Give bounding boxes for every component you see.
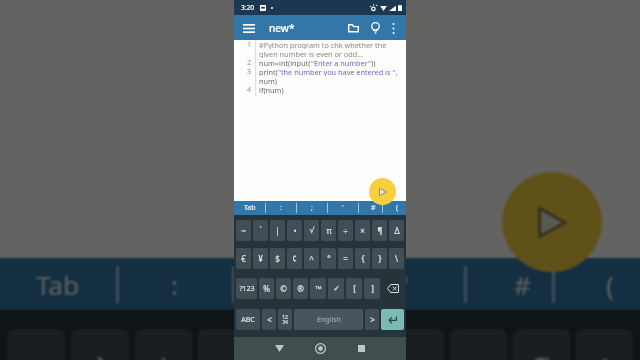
- button[interactable]: #: [464, 258, 580, 310]
- staticText: given number is even or odd...: [259, 49, 364, 58]
- staticText: 3: [247, 67, 252, 76]
- button[interactable]: :: [116, 258, 232, 310]
- staticText: ¥: [258, 253, 263, 264]
- button[interactable]: `: [71, 329, 129, 360]
- staticText: ©: [280, 283, 287, 294]
- button[interactable]: [: [346, 278, 362, 299]
- button[interactable]: ©: [276, 278, 291, 299]
- staticText: 3:20: [241, 3, 255, 12]
- button[interactable]: Tab: [0, 258, 116, 310]
- button[interactable]: {: [355, 248, 370, 269]
- button[interactable]: ÷: [387, 329, 444, 360]
- button[interactable]: ;: [296, 201, 327, 215]
- button[interactable]: Open folder: [343, 18, 363, 38]
- button[interactable]: (: [552, 258, 640, 310]
- button[interactable]: ]: [364, 278, 380, 299]
- button[interactable]: ¶: [372, 220, 387, 241]
- button[interactable]: Home: [300, 337, 341, 360]
- button[interactable]: |: [270, 220, 285, 241]
- button[interactable]: Backspace: [382, 278, 404, 299]
- button[interactable]: \: [389, 248, 404, 269]
- button[interactable]: English: [294, 309, 363, 330]
- button[interactable]: =: [338, 248, 353, 269]
- button[interactable]: ™: [310, 278, 326, 299]
- staticText: ^: [309, 253, 314, 264]
- button[interactable]: ': [348, 258, 464, 310]
- button[interactable]: Hint: [365, 18, 385, 38]
- button[interactable]: ABC: [236, 309, 260, 330]
- staticText: if(num): [259, 85, 284, 94]
- button[interactable]: Tab: [234, 201, 265, 215]
- staticText: }: [378, 253, 382, 264]
- staticText: Tab: [244, 203, 256, 213]
- button[interactable]: }: [372, 248, 387, 269]
- button[interactable]: Δ: [389, 220, 404, 241]
- button[interactable]: Menu: [242, 19, 256, 37]
- staticText: ™: [315, 283, 322, 294]
- staticText: 2: [247, 58, 252, 67]
- button[interactable]: ;: [232, 258, 348, 310]
- staticText: ¶: [532, 348, 552, 360]
- button[interactable]: ^: [304, 248, 319, 269]
- button[interactable]: π: [324, 329, 381, 360]
- staticText: ®: [297, 283, 304, 294]
- staticText: ÷: [343, 225, 348, 236]
- button[interactable]: ®: [293, 278, 308, 299]
- staticText: %: [263, 283, 270, 294]
- button[interactable]: Recent apps: [341, 337, 382, 360]
- staticText: ✓: [333, 284, 340, 293]
- button[interactable]: Run: [369, 178, 396, 205]
- button[interactable]: ×: [355, 220, 370, 241]
- staticText: |: [155, 348, 172, 360]
- button[interactable]: ¥: [253, 248, 268, 269]
- button[interactable]: ✓: [328, 278, 344, 299]
- button[interactable]: (: [382, 201, 406, 215]
- staticText: `: [96, 348, 105, 360]
- button[interactable]: %: [259, 278, 274, 299]
- staticText: num): [259, 76, 278, 85]
- button[interactable]: #: [358, 201, 389, 215]
- button[interactable]: Back: [259, 337, 300, 360]
- button[interactable]: :: [265, 201, 296, 215]
- button[interactable]: More options: [386, 19, 400, 37]
- button[interactable]: €: [236, 248, 251, 269]
- button[interactable]: ¢: [287, 248, 302, 269]
- staticText: Tab: [36, 267, 80, 302]
- button[interactable]: `: [253, 220, 268, 241]
- button[interactable]: Run: [502, 172, 602, 272]
- staticText: π: [326, 225, 332, 236]
- staticText: 1: [247, 40, 252, 49]
- button[interactable]: •: [287, 220, 302, 241]
- button[interactable]: ~: [236, 220, 251, 241]
- button[interactable]: ?123: [236, 278, 257, 299]
- staticText: ;: [311, 203, 313, 213]
- staticText: 12 34: [282, 314, 288, 325]
- staticText: ×: [360, 225, 365, 236]
- button[interactable]: Enter: [381, 309, 404, 330]
- button[interactable]: <: [262, 309, 276, 330]
- button[interactable]: ÷: [338, 220, 353, 241]
- button[interactable]: ': [327, 201, 358, 215]
- staticText: ': [342, 203, 344, 213]
- button[interactable]: √: [304, 220, 319, 241]
- button[interactable]: ¶: [513, 329, 570, 360]
- button[interactable]: π: [321, 220, 336, 241]
- button[interactable]: •: [198, 329, 255, 360]
- staticText: <: [267, 314, 272, 325]
- staticText: #: [371, 203, 376, 213]
- staticText: 4: [247, 85, 252, 94]
- staticText: #Python program to chk whether the: [259, 40, 387, 49]
- button[interactable]: 12 34: [278, 309, 292, 330]
- staticText: "the number you have entered is ": [278, 67, 396, 76]
- button[interactable]: √: [261, 329, 318, 360]
- button[interactable]: $: [270, 248, 285, 269]
- staticText: (: [396, 203, 399, 213]
- staticText: √: [309, 226, 315, 235]
- button[interactable]: °: [321, 248, 336, 269]
- button[interactable]: >: [365, 309, 379, 330]
